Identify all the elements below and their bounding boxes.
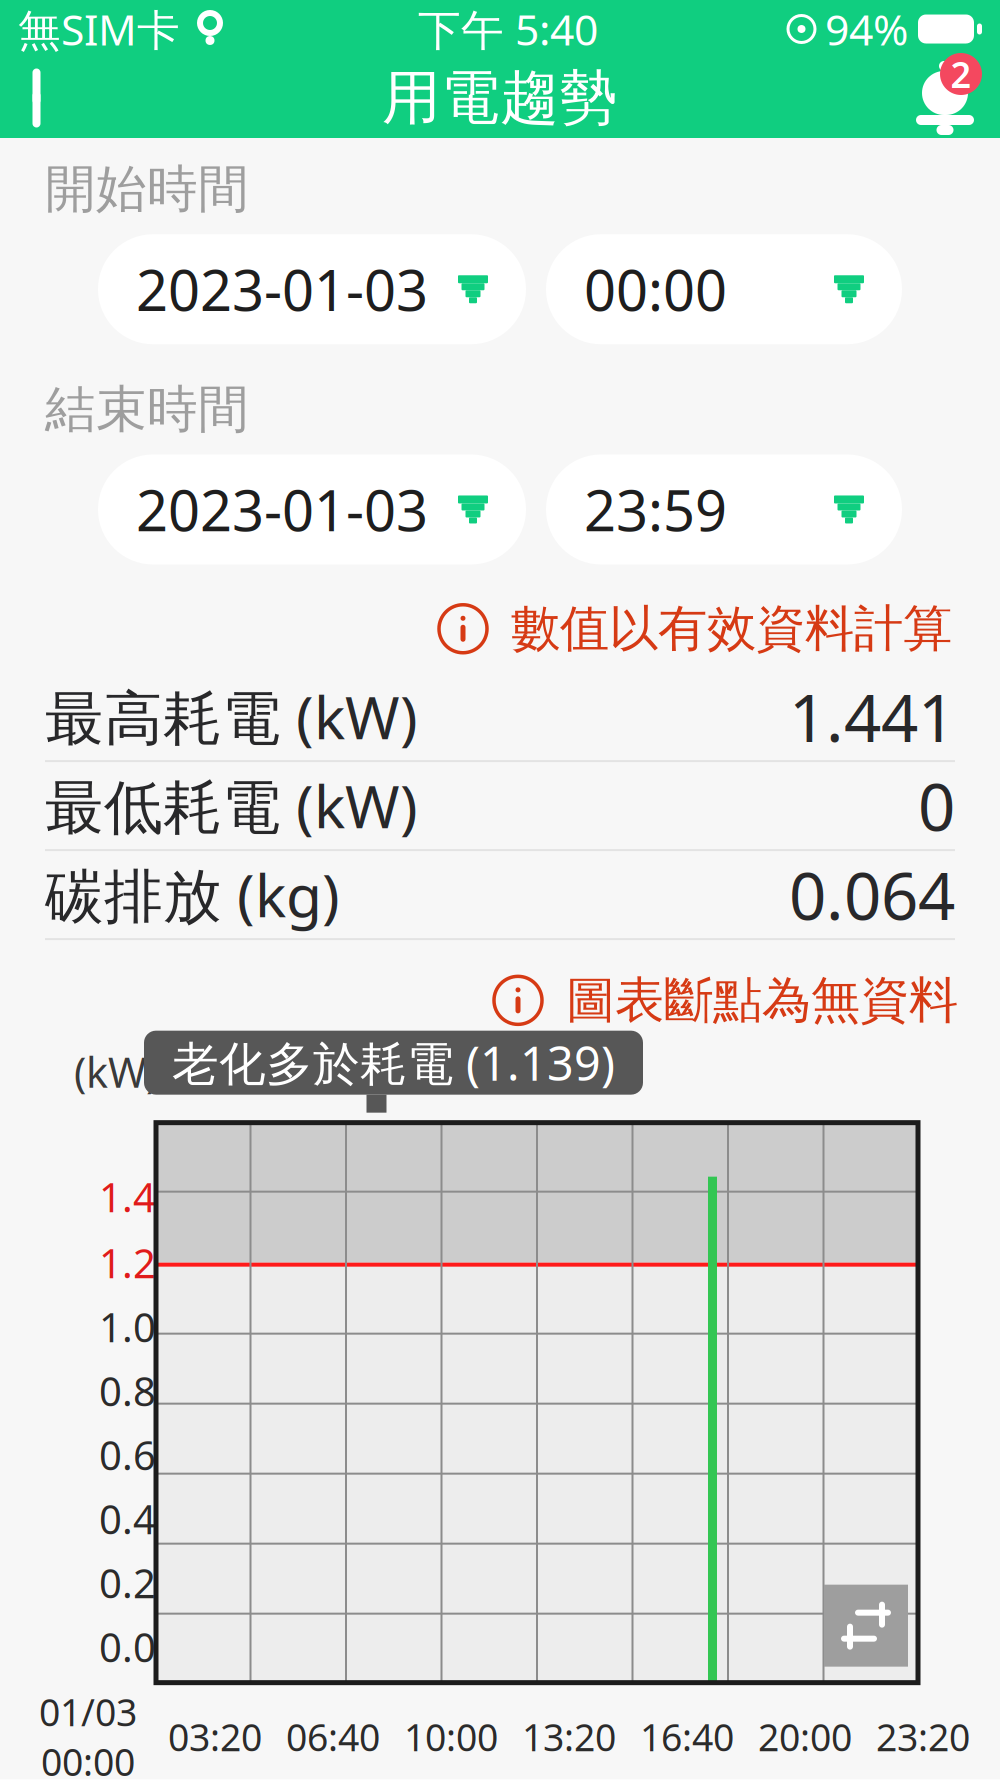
button[interactable]: 2023-01-03 [98,234,526,344]
button[interactable]: 2023-01-03 [98,454,526,564]
staticText: 1.441 [789,673,955,760]
staticText: 20:00 [758,1712,852,1761]
staticText: 23:20 [876,1712,970,1761]
staticText: 最高耗電 (kW) [45,678,418,755]
staticText: 開始時間 [45,158,249,220]
staticText: 下午 5:40 [418,1,598,57]
staticText: 2023-01-03 [136,252,428,326]
button[interactable]: 23:59 [546,454,902,564]
staticText: 1.2 [99,1236,156,1289]
staticText: 00:00 [584,252,727,326]
staticText: 0.8 [99,1364,156,1417]
staticText: 0.2 [99,1556,156,1609]
button[interactable]: 通知 [890,53,1000,143]
staticText: 0.0 [99,1620,156,1673]
staticText: 23:59 [584,472,727,547]
staticText: 94% [825,1,908,57]
button[interactable]: 返回 [0,67,86,129]
staticText: (kW) [74,1044,158,1099]
staticText: 數值以有效資料計算 [511,598,952,659]
staticText: 老化多於耗電 (1.139) [172,1032,615,1094]
staticText: 1.4 [99,1170,156,1223]
staticText: 圖表斷點為無資料 [566,970,958,1031]
staticText: 03:20 [168,1712,262,1761]
staticText: 無SIM卡 [18,1,180,57]
staticText: 0.064 [789,851,955,938]
staticText: 1.0 [99,1300,156,1353]
button[interactable]: 00:00 [546,234,902,344]
staticText: 01/03 [39,1687,137,1737]
staticText: 0.4 [99,1492,156,1545]
staticText: 0 [918,762,955,849]
staticText: 最低耗電 (kW) [45,767,418,844]
staticText: 0.6 [99,1428,156,1481]
staticText: 結束時間 [45,378,249,440]
staticText: 2023-01-03 [136,472,428,547]
staticText: 碳排放 (kg) [45,856,340,933]
staticText: 13:20 [522,1712,616,1761]
staticText: 06:40 [286,1712,380,1761]
staticText: 16:40 [640,1712,734,1761]
staticText: 00:00 [41,1737,135,1781]
staticText: 用電趨勢 [382,62,618,134]
staticText: 2 [950,50,971,98]
button[interactable]: 放大圖表 [824,1585,908,1667]
staticText: 10:00 [404,1712,498,1761]
